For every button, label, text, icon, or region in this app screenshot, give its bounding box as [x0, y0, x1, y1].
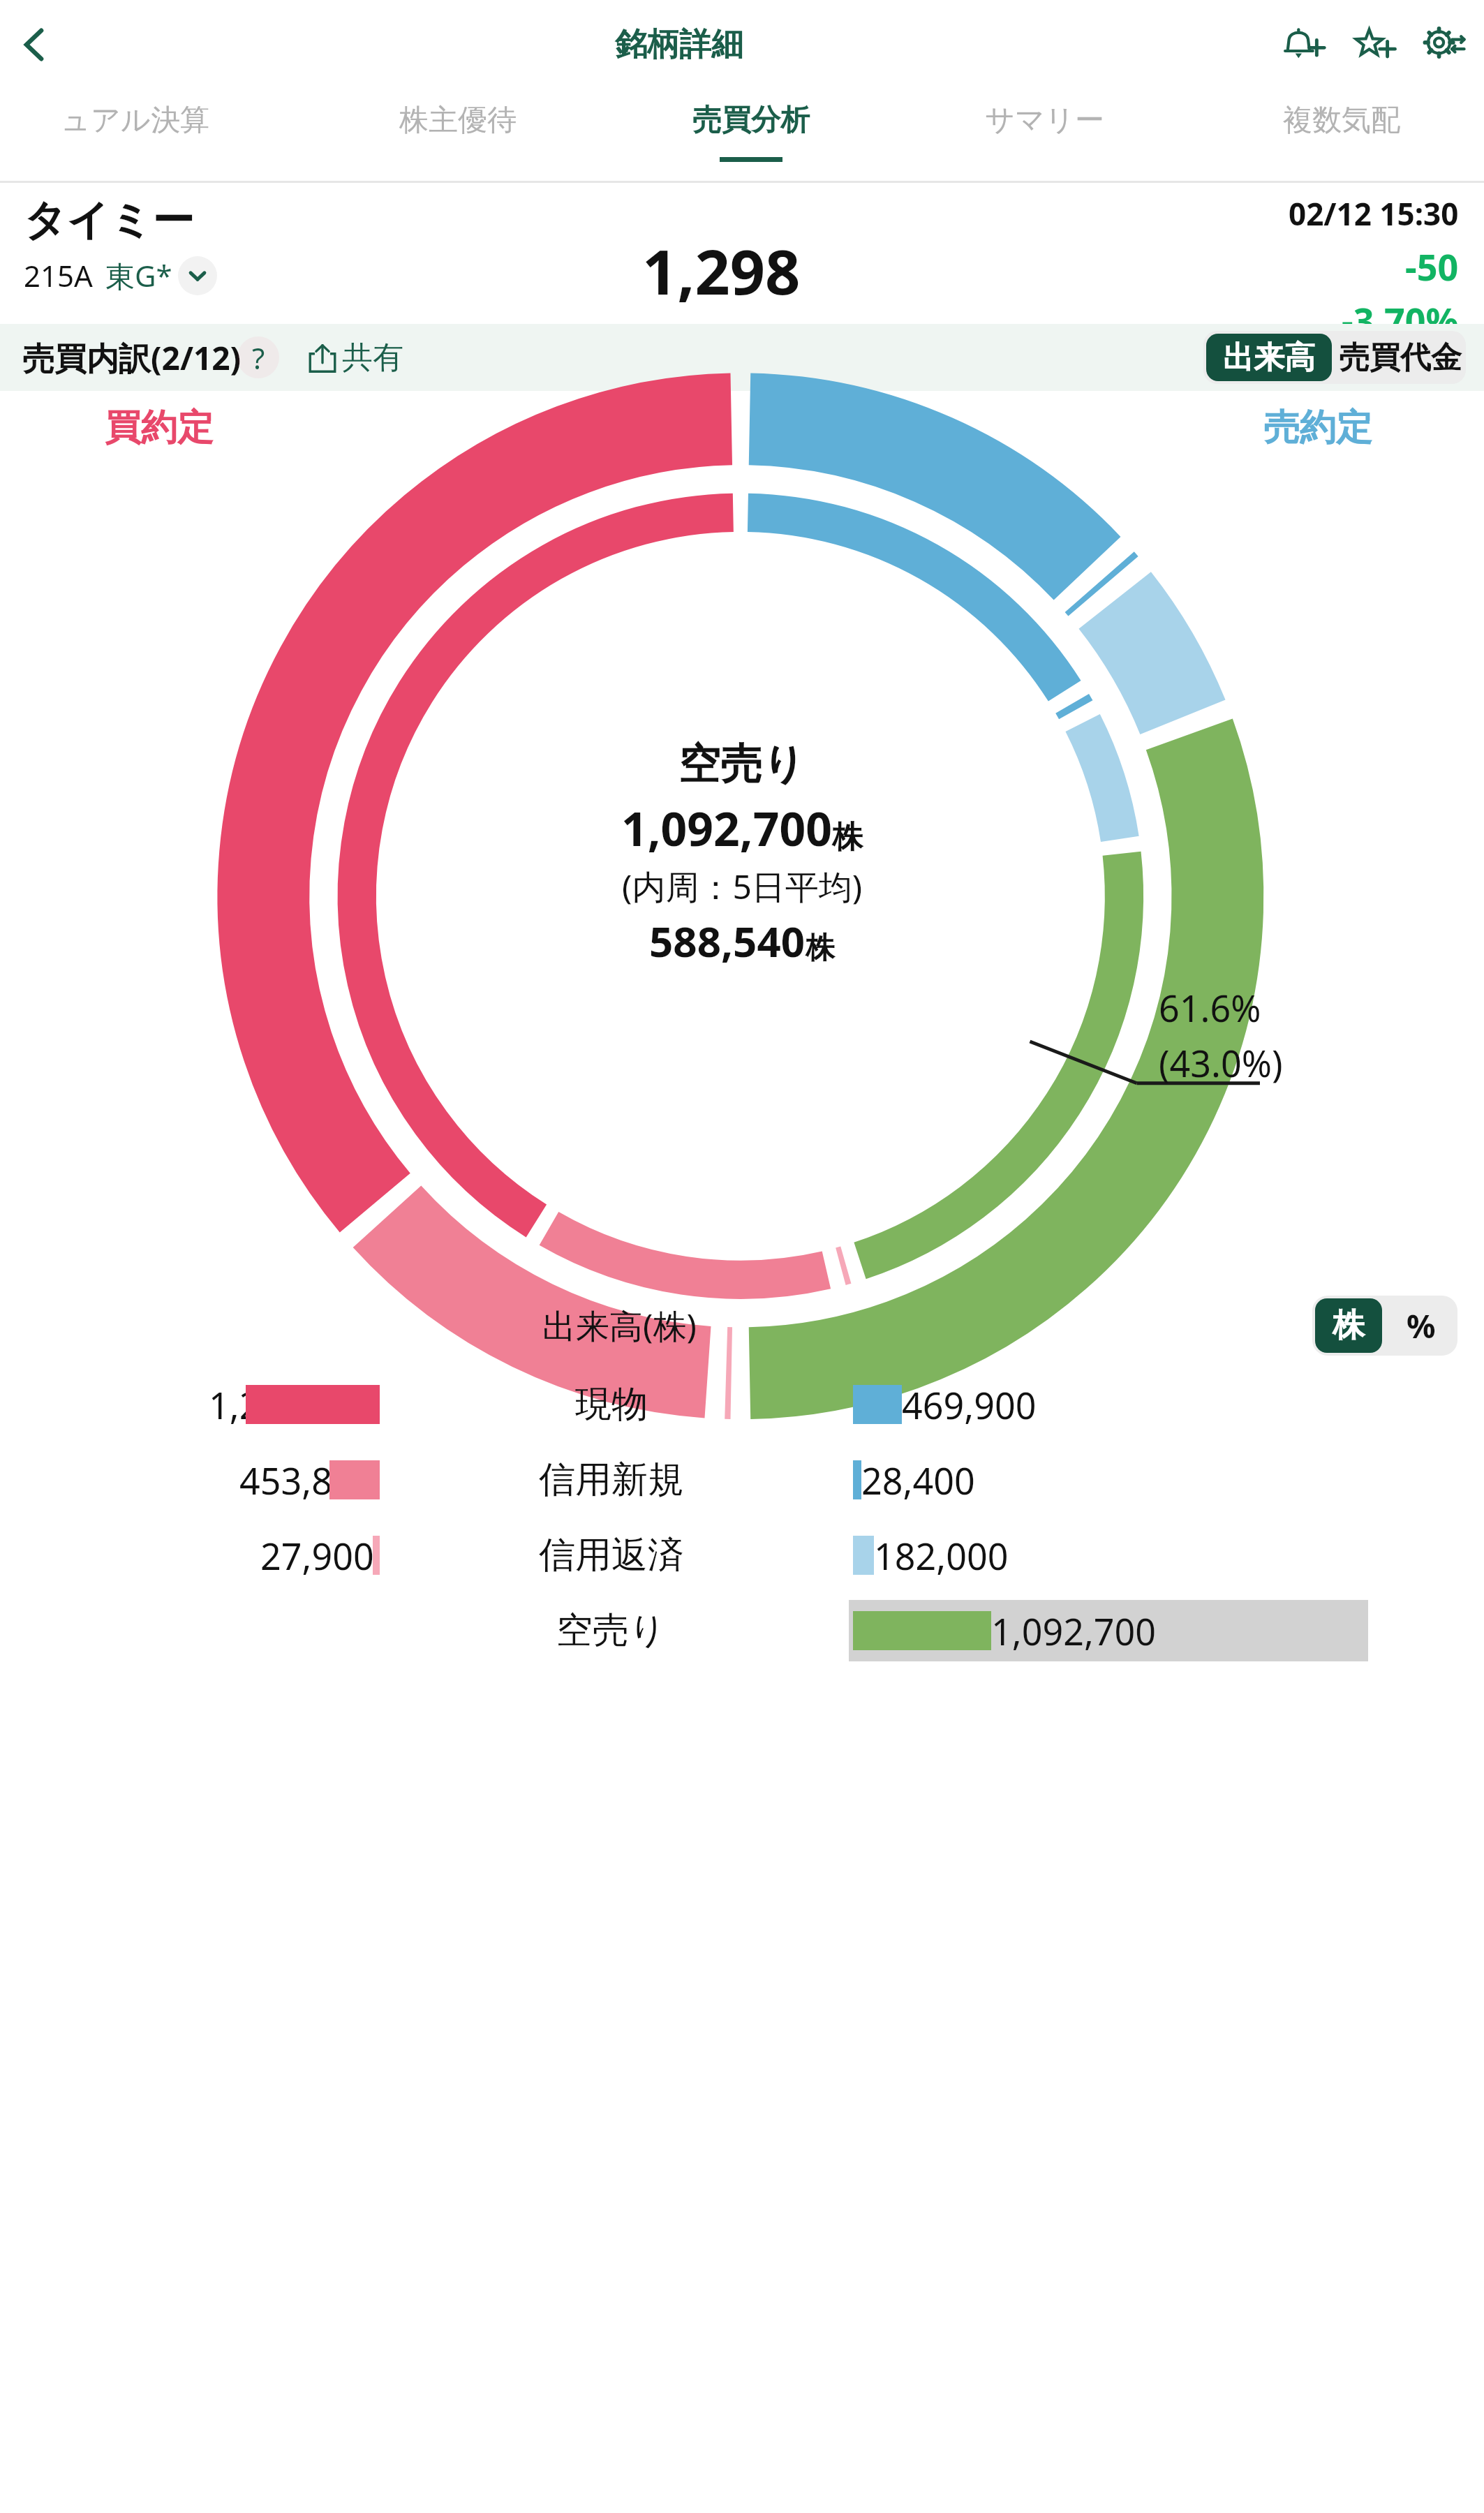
staticText: 1,298 — [642, 229, 801, 313]
staticText: 売買分析 — [692, 102, 810, 139]
staticText: 588,540 — [649, 912, 806, 970]
staticText: 現物 — [575, 1381, 648, 1428]
staticText: タイミー — [24, 194, 195, 247]
button[interactable]: 共有 — [300, 333, 409, 383]
staticText: 信用返済 — [539, 1532, 684, 1578]
button[interactable]: 売買分析 — [604, 102, 898, 195]
button[interactable]: 複数気配 — [1191, 102, 1484, 195]
button[interactable]: Help — [237, 336, 279, 378]
staticText: -3.70% — [1342, 295, 1459, 324]
staticText: 453,800 — [239, 1455, 374, 1505]
staticText: 出来高(株) — [542, 1303, 697, 1349]
staticText: 株 — [1333, 1305, 1365, 1346]
staticText: 銘柄詳細 — [615, 24, 743, 65]
button[interactable]: 売買代金 — [1337, 334, 1463, 381]
staticText: 1,092,700 — [621, 796, 832, 859]
staticText: 信用新規 — [539, 1457, 684, 1503]
staticText: 出来高 — [1223, 339, 1315, 377]
staticText: 1,092,700 — [991, 1606, 1157, 1656]
button[interactable]: Settings — [1414, 15, 1474, 75]
staticText: 売約定 — [1263, 405, 1372, 451]
staticText: 共有 — [342, 339, 403, 377]
staticText: ? — [252, 338, 265, 378]
staticText: 売買代金 — [1339, 339, 1462, 377]
staticText: ュアル決算 — [61, 102, 209, 139]
staticText: 182,000 — [874, 1531, 1009, 1580]
staticText: 1,291,300 — [209, 1380, 374, 1430]
button[interactable]: 出来高 — [1206, 334, 1332, 381]
staticText: 空売り — [678, 738, 806, 791]
staticText: (内周：5日平均) — [622, 863, 863, 910]
staticText: 買約定 — [105, 405, 214, 451]
staticText: 株 — [832, 818, 863, 857]
button[interactable]: Add to watchlist — [1344, 15, 1404, 75]
button[interactable]: Add price alert — [1275, 15, 1335, 75]
staticText: 28,400 — [861, 1455, 975, 1505]
staticText: 469,900 — [902, 1380, 1037, 1430]
staticText: 215A — [24, 255, 93, 295]
staticText: 27,900 — [260, 1531, 374, 1580]
staticText: サマリー — [985, 102, 1104, 139]
staticText: 東G* — [105, 255, 172, 295]
staticText: 複数気配 — [1283, 102, 1400, 139]
staticText: % — [1407, 1304, 1436, 1348]
button[interactable]: ュアル決算 — [0, 102, 311, 195]
button[interactable]: 株 — [1315, 1298, 1382, 1353]
staticText: 売買内訳(2/12) — [22, 336, 242, 380]
staticText: 株主優待 — [399, 102, 517, 139]
button[interactable]: 株主優待 — [311, 102, 604, 195]
button[interactable]: Change market — [178, 256, 217, 295]
staticText: (43.0%) — [1159, 1038, 1283, 1088]
staticText: 空売り — [556, 1608, 667, 1654]
staticText: 61.6% — [1159, 983, 1261, 1032]
button[interactable]: Back — [4, 15, 64, 75]
staticText: -50 — [1405, 242, 1459, 291]
staticText: 株 — [806, 930, 835, 967]
button[interactable]: サマリー — [898, 102, 1191, 195]
staticText: 02/12 15:30 — [1289, 193, 1459, 235]
button[interactable]: % — [1388, 1298, 1455, 1353]
